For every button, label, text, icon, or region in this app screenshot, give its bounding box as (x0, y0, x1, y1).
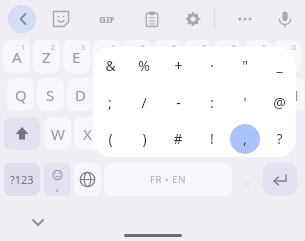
button[interactable]: ?123 (4, 163, 40, 196)
staticText: 3 (81, 43, 86, 53)
staticText: 6 (172, 43, 177, 53)
button[interactable]: More options (231, 5, 259, 33)
staticText: T (132, 47, 141, 67)
staticText: & (105, 56, 116, 75)
staticText: ! (210, 129, 214, 148)
button[interactable]: Emoji (44, 163, 71, 196)
button[interactable]: Change language (74, 163, 101, 196)
button[interactable]: ) (127, 120, 161, 157)
button[interactable]: R (93, 40, 120, 73)
button[interactable]: Y (154, 40, 181, 73)
button[interactable]: GIF (93, 5, 121, 33)
button[interactable]: : (195, 84, 229, 121)
button[interactable]: T (123, 40, 150, 73)
staticText: N (203, 124, 215, 144)
button[interactable]: C (104, 117, 131, 150)
staticText: D (75, 85, 86, 105)
button[interactable]: ! (195, 120, 229, 157)
staticText: 1 (21, 43, 26, 53)
staticText: A (12, 47, 22, 67)
button[interactable]: # (161, 120, 195, 157)
staticText: V (143, 124, 153, 144)
staticText: _ (276, 56, 283, 75)
staticText: , (56, 179, 59, 194)
button[interactable]: Hide keyboard (25, 210, 51, 234)
button[interactable]: E (63, 40, 90, 73)
button[interactable]: ( (93, 120, 127, 157)
button[interactable]: H (158, 78, 185, 111)
button[interactable]: & (93, 47, 127, 84)
button[interactable]: P (274, 40, 301, 73)
staticText: " (242, 56, 248, 75)
staticText: : (210, 93, 214, 112)
button[interactable]: / (127, 84, 161, 121)
button[interactable]: S (37, 78, 64, 111)
button[interactable]: F (97, 78, 124, 111)
button[interactable]: Q (7, 78, 34, 111)
button[interactable]: % (127, 47, 161, 84)
staticText: @ (273, 93, 286, 112)
button[interactable]: O (244, 40, 271, 73)
staticText: 4 (111, 43, 116, 53)
button[interactable]: Back (8, 5, 36, 33)
staticText: E (72, 47, 81, 67)
staticText: W (51, 124, 65, 144)
staticText: 7 (202, 43, 207, 53)
staticText: / (141, 93, 147, 112)
button[interactable]: _ (262, 47, 296, 84)
button[interactable]: L (248, 78, 275, 111)
button[interactable]: + (161, 47, 195, 84)
staticText: ?123 (10, 172, 34, 187)
button[interactable]: Clipboard (138, 5, 166, 33)
button[interactable]: K (218, 78, 245, 111)
button[interactable]: @ (262, 84, 296, 121)
button[interactable]: U (184, 40, 211, 73)
staticText: R (102, 47, 112, 67)
button[interactable]: Enter (263, 163, 297, 196)
button[interactable]: V (134, 117, 161, 150)
button[interactable]: G (127, 78, 154, 111)
button[interactable]: FR • EN (104, 163, 232, 196)
staticText: G (135, 85, 146, 105)
staticText: GIF (99, 13, 115, 26)
button[interactable]: Shift (4, 117, 40, 150)
button[interactable]: - (161, 84, 195, 121)
staticText: X (83, 124, 92, 144)
staticText: Q (15, 85, 27, 105)
button[interactable]: ' (228, 84, 262, 121)
button[interactable]: A (3, 40, 30, 73)
staticText: FR • EN (150, 173, 187, 186)
staticText: ? (276, 129, 283, 148)
staticText: ; (108, 93, 112, 112)
staticText: Z (42, 47, 51, 67)
button[interactable]: Z (33, 40, 60, 73)
button[interactable]: Stickers (47, 5, 75, 33)
staticText: 0 (292, 43, 297, 53)
button[interactable]: Settings (179, 5, 207, 33)
staticText: 5 (141, 43, 146, 53)
button[interactable]: ; (93, 84, 127, 121)
button[interactable]: " (228, 47, 262, 84)
button[interactable]: W (44, 117, 71, 150)
button[interactable]: D (67, 78, 94, 111)
staticText: ) (142, 129, 147, 148)
button[interactable]: , (228, 120, 262, 157)
button[interactable]: · (195, 47, 229, 84)
button[interactable]: J (188, 78, 215, 111)
button[interactable]: B (164, 117, 191, 150)
staticText: # (173, 129, 183, 148)
staticText: P (283, 47, 293, 67)
staticText: , (243, 129, 247, 148)
button[interactable]: ? (262, 120, 296, 157)
button[interactable]: X (74, 117, 101, 150)
button[interactable]: I (214, 40, 241, 73)
button[interactable]: N (195, 117, 222, 150)
button[interactable]: M (278, 78, 305, 111)
button[interactable]: Voice input (271, 5, 299, 33)
